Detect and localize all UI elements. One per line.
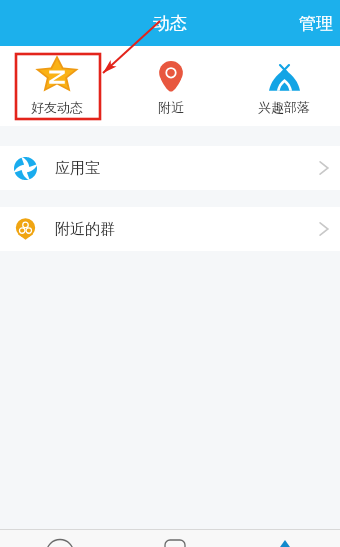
staticText: 好友动态: [31, 99, 83, 115]
button[interactable]: Recent apps: [0, 530, 120, 547]
button[interactable]: 管理: [287, 3, 340, 44]
staticText: 附近的群: [55, 220, 115, 239]
button[interactable]: Back: [230, 530, 340, 547]
button[interactable]: 附近: [114, 46, 227, 126]
button[interactable]: Home: [120, 530, 230, 547]
button[interactable]: 好友动态: [0, 46, 114, 126]
staticText: 管理: [299, 13, 333, 34]
button[interactable]: 应用宝: [0, 146, 340, 190]
staticText: 动态: [153, 13, 187, 34]
staticText: 附近: [158, 99, 184, 115]
button[interactable]: 附近的群: [0, 207, 340, 251]
staticText: 兴趣部落: [258, 99, 310, 115]
staticText: 应用宝: [55, 159, 100, 178]
button[interactable]: 兴趣部落: [227, 46, 340, 126]
